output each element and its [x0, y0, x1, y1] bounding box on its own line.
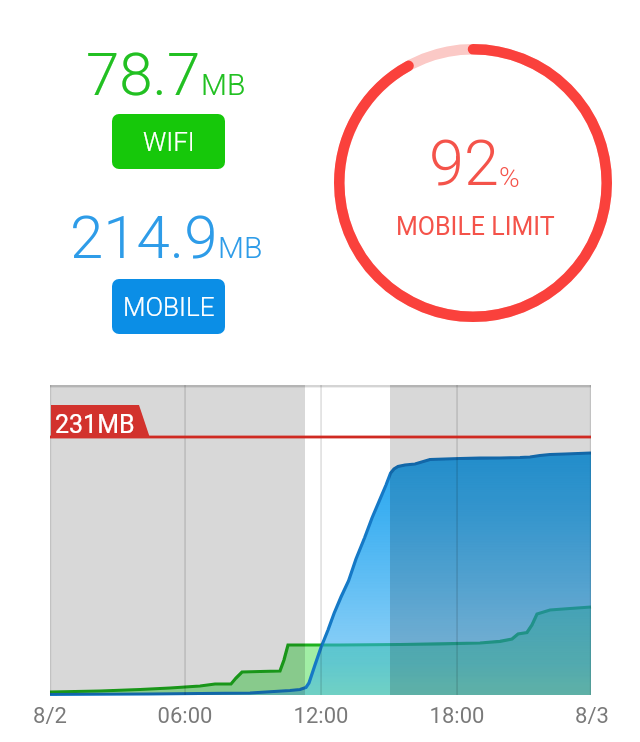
- staticText: 12:00: [271, 703, 371, 729]
- staticText: MOBILE: [123, 292, 215, 322]
- button[interactable]: WIFI: [112, 114, 225, 169]
- staticText: MOBILE LIMIT: [396, 212, 555, 241]
- staticText: 8/2: [0, 703, 100, 729]
- staticText: 8/3: [542, 703, 640, 729]
- staticText: MB: [218, 230, 263, 265]
- staticText: 18:00: [407, 703, 507, 729]
- staticText: WIFI: [143, 127, 195, 157]
- staticText: 78.7: [86, 39, 201, 109]
- button[interactable]: Mobile data limit 92 percent: [334, 44, 612, 322]
- staticText: 214.9: [70, 202, 218, 272]
- staticText: 231MB: [55, 410, 135, 439]
- staticText: 92: [429, 127, 499, 201]
- staticText: 06:00: [135, 703, 235, 729]
- staticText: %: [499, 161, 520, 194]
- staticText: MB: [201, 67, 246, 102]
- button[interactable]: MOBILE: [112, 279, 225, 334]
